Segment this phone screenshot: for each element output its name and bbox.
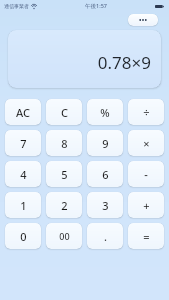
button[interactable]: AC bbox=[5, 99, 41, 125]
button[interactable]: 7 bbox=[5, 130, 41, 156]
button[interactable]: 4 bbox=[5, 161, 41, 187]
staticText: . bbox=[104, 229, 107, 244]
button[interactable]: 00 bbox=[46, 223, 82, 249]
staticText: 3 bbox=[102, 198, 109, 213]
button[interactable]: ÷ bbox=[128, 99, 164, 125]
button[interactable]: C bbox=[46, 99, 82, 125]
staticText: 5 bbox=[61, 167, 68, 182]
button[interactable]: 2 bbox=[46, 192, 82, 218]
button[interactable]: 3 bbox=[87, 192, 123, 218]
staticText: × bbox=[143, 136, 150, 151]
staticText: 0.78×9 bbox=[97, 51, 151, 74]
staticText: ÷ bbox=[143, 105, 150, 120]
button[interactable]: 9 bbox=[87, 130, 123, 156]
button[interactable]: . bbox=[87, 223, 123, 249]
staticText: 1 bbox=[20, 198, 27, 213]
staticText: 7 bbox=[20, 136, 27, 151]
staticText: 4 bbox=[20, 167, 27, 182]
staticText: 00 bbox=[59, 230, 70, 242]
staticText: % bbox=[100, 105, 110, 120]
button[interactable]: = bbox=[128, 223, 164, 249]
button[interactable]: + bbox=[128, 192, 164, 218]
button[interactable]: 5 bbox=[46, 161, 82, 187]
staticText: 6 bbox=[102, 167, 109, 182]
staticText: 9 bbox=[102, 136, 109, 151]
staticText: 午後1:57 bbox=[85, 2, 107, 10]
button[interactable]: 0 bbox=[5, 223, 41, 249]
staticText: - bbox=[144, 167, 148, 182]
button[interactable]: - bbox=[128, 161, 164, 187]
staticText: = bbox=[143, 229, 150, 244]
button[interactable]: 1 bbox=[5, 192, 41, 218]
staticText: 通信事業者 bbox=[4, 3, 29, 9]
button[interactable]: % bbox=[87, 99, 123, 125]
staticText: AC bbox=[16, 105, 30, 120]
button[interactable]: 6 bbox=[87, 161, 123, 187]
staticText: 0 bbox=[20, 229, 27, 244]
button[interactable]: 8 bbox=[46, 130, 82, 156]
staticText: 8 bbox=[61, 136, 68, 151]
staticText: + bbox=[143, 198, 150, 213]
button[interactable]: More options bbox=[128, 14, 158, 26]
staticText: C bbox=[61, 105, 68, 120]
button[interactable]: × bbox=[128, 130, 164, 156]
staticText: 2 bbox=[61, 198, 68, 213]
